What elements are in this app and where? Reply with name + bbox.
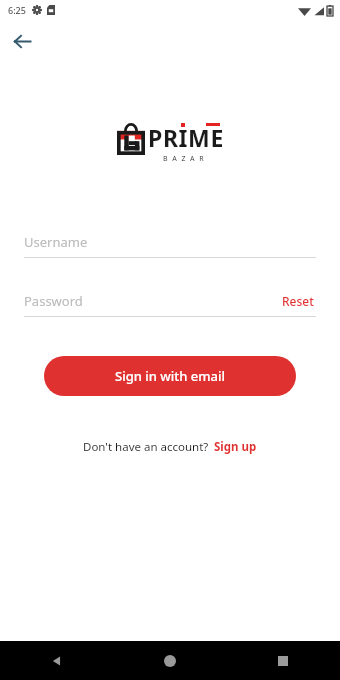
button[interactable]: Password (24, 286, 316, 316)
button[interactable]: Home (150, 641, 190, 680)
button[interactable]: Back (37, 641, 77, 680)
staticText: Don't have an account? (83, 439, 209, 455)
button[interactable]: Recent apps (263, 641, 303, 680)
button[interactable]: Sign up (213, 436, 258, 458)
button[interactable]: Sign in with email (44, 356, 296, 396)
staticText: Sign in with email (115, 367, 226, 385)
staticText: PRIME (148, 122, 224, 153)
button[interactable]: Back (6, 25, 38, 57)
staticText: Password (24, 292, 83, 310)
staticText: Username (24, 233, 88, 251)
staticText: B A Z A R (163, 154, 206, 164)
button[interactable]: Username (24, 227, 316, 257)
staticText: Sign up (214, 439, 257, 455)
staticText: 6:25 (8, 4, 26, 16)
staticText: Reset (282, 293, 314, 309)
button[interactable]: Reset (280, 289, 316, 313)
